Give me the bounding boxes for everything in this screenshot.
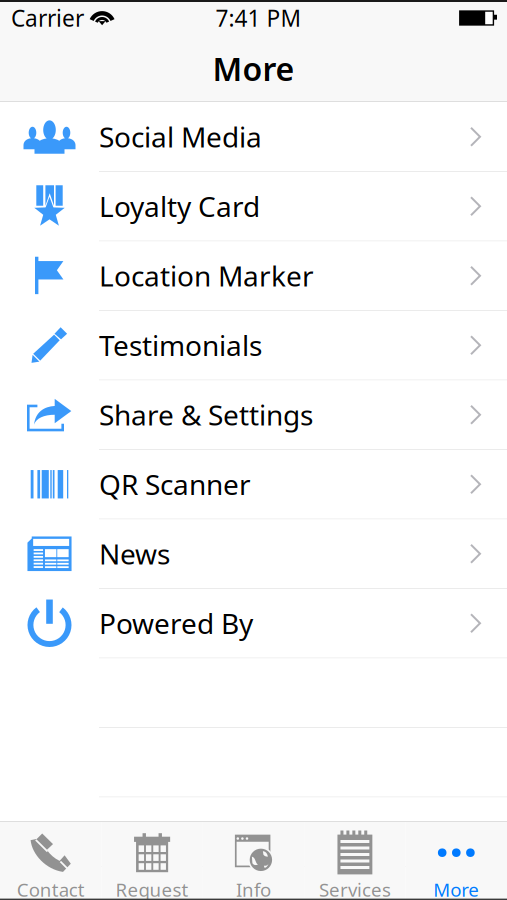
staticText: Loyalty Card bbox=[99, 188, 260, 225]
button[interactable]: Location Marker bbox=[0, 241, 507, 311]
staticText: Location Marker bbox=[99, 257, 314, 294]
staticText: News bbox=[99, 535, 170, 572]
staticText: Social Media bbox=[99, 118, 262, 155]
button[interactable]: QR Scanner bbox=[0, 450, 507, 519]
staticText: More bbox=[433, 877, 479, 900]
staticText: More bbox=[212, 47, 294, 90]
staticText: QR Scanner bbox=[99, 466, 251, 503]
staticText: Services bbox=[319, 877, 391, 900]
button[interactable]: News bbox=[0, 519, 507, 589]
staticText: 7:41 PM bbox=[215, 3, 301, 33]
button[interactable]: Loyalty Card bbox=[0, 172, 507, 241]
staticText: Info bbox=[236, 877, 271, 900]
button[interactable]: Request bbox=[101, 822, 203, 900]
staticText: Carrier bbox=[11, 3, 84, 33]
button[interactable]: Services bbox=[304, 822, 406, 900]
staticText: Request bbox=[116, 877, 189, 900]
button[interactable]: Info bbox=[203, 822, 304, 900]
staticText: Share & Settings bbox=[99, 396, 313, 433]
button[interactable]: Social Media bbox=[0, 102, 507, 172]
staticText: Testimonials bbox=[99, 327, 262, 364]
staticText: Contact bbox=[17, 877, 85, 900]
staticText: Powered By bbox=[99, 605, 253, 642]
button[interactable]: Powered By bbox=[0, 589, 507, 658]
button[interactable]: Share & Settings bbox=[0, 380, 507, 450]
button[interactable]: Contact bbox=[0, 822, 101, 900]
button[interactable]: More bbox=[406, 822, 507, 900]
button[interactable]: Testimonials bbox=[0, 311, 507, 380]
